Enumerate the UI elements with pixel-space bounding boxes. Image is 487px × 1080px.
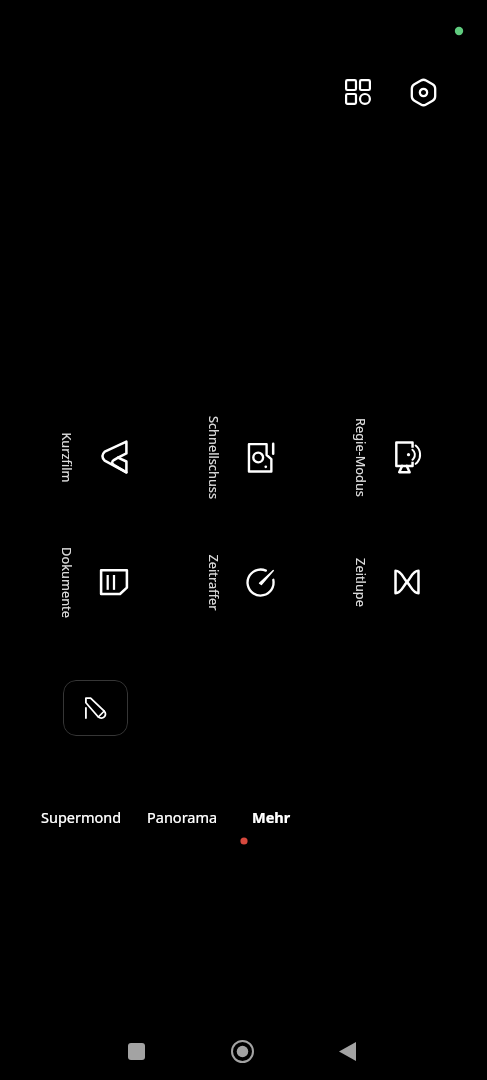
button[interactable]: Home [218,1027,266,1075]
staticText: Mehr [252,807,291,827]
button[interactable]: Settings [399,68,447,116]
button[interactable] [45,532,140,632]
button[interactable]: Edit modes [63,680,128,736]
button[interactable] [192,532,287,632]
staticText: Panorama [147,807,218,827]
button[interactable]: Supermond [26,800,136,834]
staticText: Kurzfilm [58,397,75,517]
staticText: Regie-Modus [352,397,369,517]
button[interactable]: Mehr [216,800,326,834]
button[interactable] [45,407,141,507]
button[interactable] [339,532,433,632]
button[interactable]: Back [323,1027,371,1075]
staticText: Zeitlupe [352,522,369,642]
button[interactable]: Panorama [127,800,237,834]
staticText: Zeitraffer [205,522,222,642]
button[interactable] [192,407,287,507]
staticText: Supermond [41,807,122,827]
staticText: Dokumente [58,522,75,642]
button[interactable] [339,407,434,507]
button[interactable]: Recent apps [112,1027,160,1075]
staticText: Schnellschuss [205,397,222,517]
button[interactable]: Shooting modes [334,68,382,116]
